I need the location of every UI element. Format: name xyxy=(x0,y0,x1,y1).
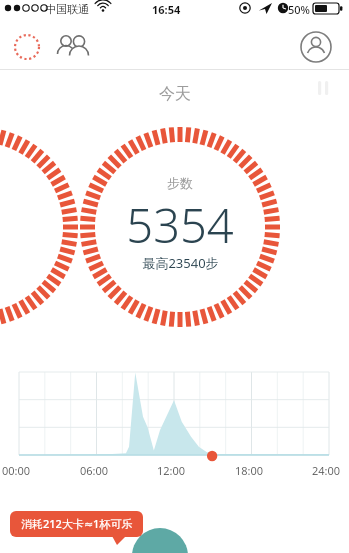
button[interactable]: Friends xyxy=(56,30,90,64)
staticText: 中国联通 xyxy=(45,2,89,16)
button[interactable]: Activity xyxy=(10,30,44,64)
staticText: 12:00 xyxy=(157,463,186,478)
button[interactable]: Add record xyxy=(138,528,182,553)
staticText: 00:00 xyxy=(2,463,31,478)
button[interactable]: Steps today 5354 xyxy=(80,175,280,285)
staticText: 50% xyxy=(288,2,310,17)
button[interactable]: 消耗212大卡≈1杯可乐 xyxy=(10,510,143,537)
staticText: 最高23540步 xyxy=(142,254,219,272)
staticText: 今天 xyxy=(159,84,191,104)
staticText: 消耗212大卡≈1杯可乐 xyxy=(21,516,133,531)
staticText: 步数 xyxy=(167,175,193,191)
staticText: 06:00 xyxy=(80,463,109,478)
button[interactable]: Activity chart xyxy=(12,366,337,458)
button[interactable]: Profile xyxy=(299,30,333,64)
staticText: 18:00 xyxy=(235,463,264,478)
staticText: 16:54 xyxy=(152,2,181,17)
button[interactable]: Pause xyxy=(312,78,334,100)
staticText: 24:00 xyxy=(312,463,341,478)
staticText: 5354 xyxy=(126,193,234,257)
